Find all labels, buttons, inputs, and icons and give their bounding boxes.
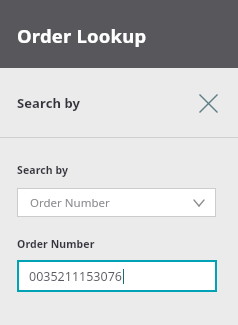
staticText: Order Number [17,237,95,251]
button[interactable]: Close [192,87,224,119]
staticText: Order Number [30,195,110,211]
staticText: 0035211153076 [29,268,122,285]
staticText: Search by [17,163,69,177]
button[interactable]: 0035211153076 [17,260,217,292]
staticText: Search by [17,94,81,112]
staticText: Order Lookup [17,23,147,48]
button[interactable]: Order Number [17,188,216,217]
